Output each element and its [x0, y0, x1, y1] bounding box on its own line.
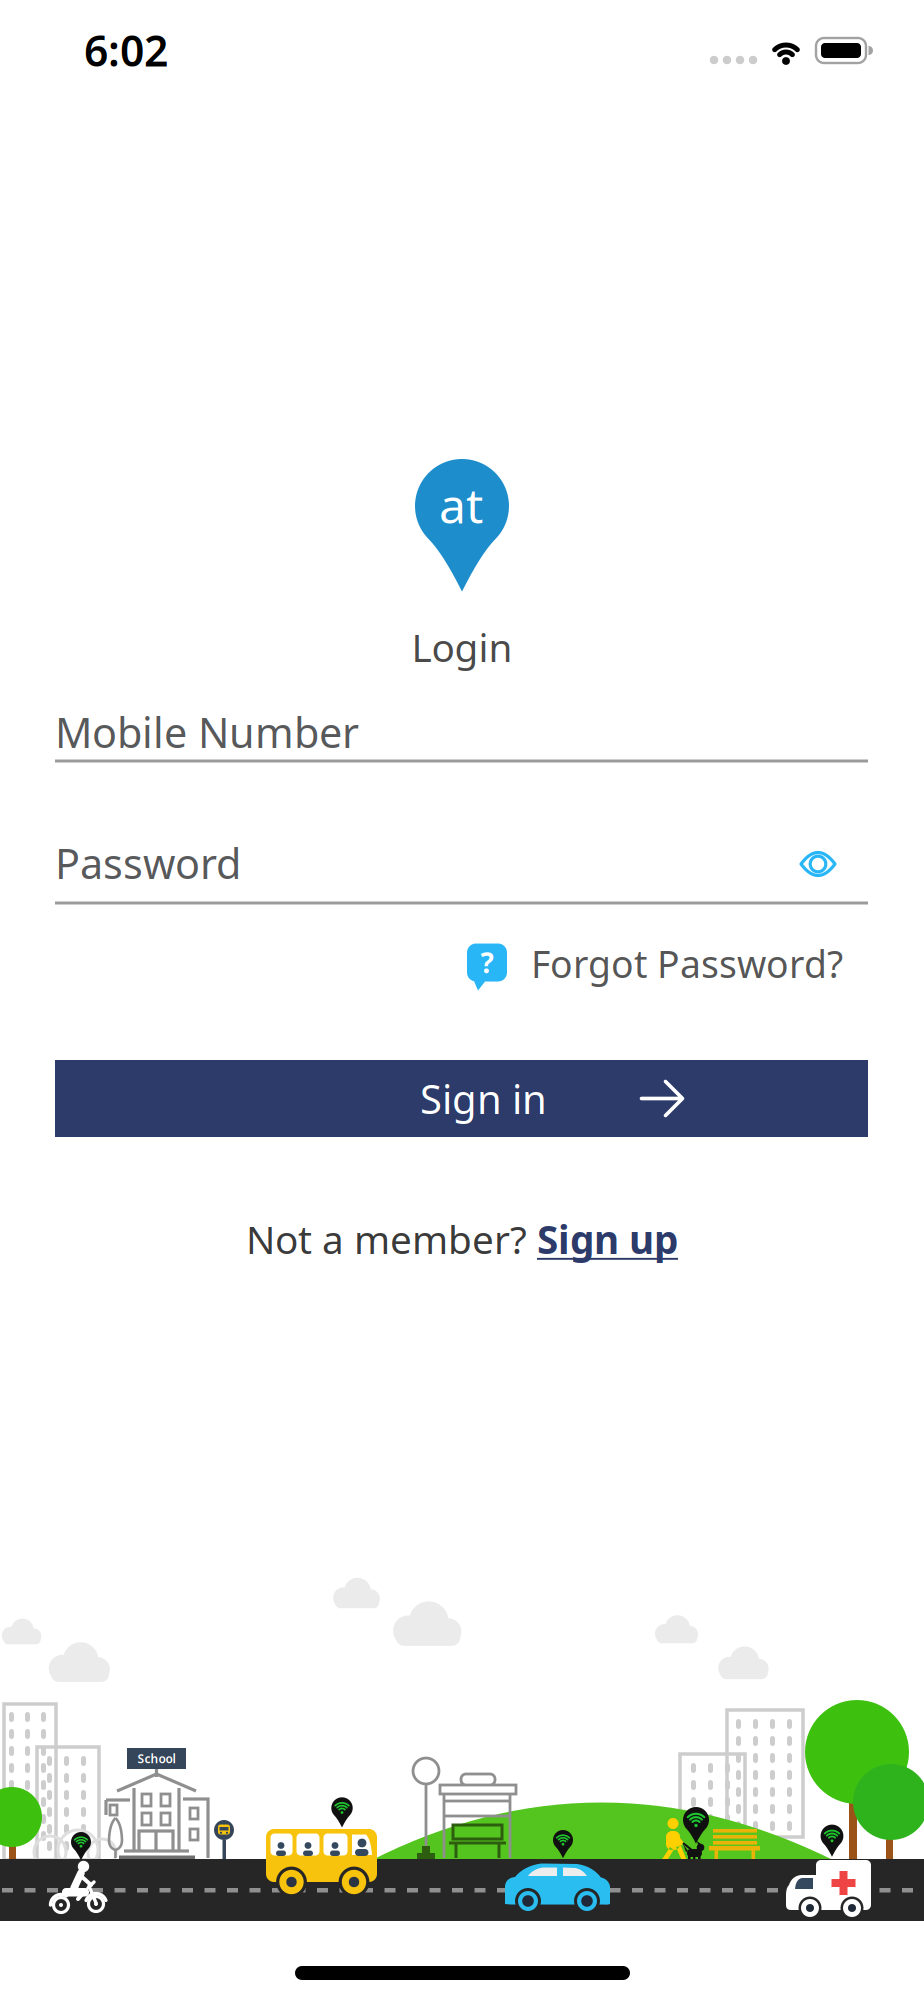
- staticText: ?: [480, 944, 493, 981]
- button[interactable]: Not a member?: [246, 1213, 678, 1265]
- staticText: 6:02: [84, 22, 168, 78]
- staticText: Sign up: [537, 1213, 678, 1265]
- staticText: Login: [411, 621, 512, 673]
- staticText: Sign in: [420, 1072, 547, 1125]
- staticText: Mobile Number: [55, 705, 359, 759]
- button[interactable]: [795, 840, 841, 888]
- button[interactable]: Sign in: [55, 1060, 868, 1137]
- button[interactable]: ?: [0, 939, 924, 988]
- staticText: Not a member?: [246, 1213, 537, 1265]
- button[interactable]: Password: [55, 835, 868, 891]
- staticText: School: [137, 1750, 175, 1766]
- staticText: Forgot Password?: [531, 939, 843, 988]
- staticText: at: [439, 473, 483, 537]
- staticText: Password: [55, 836, 241, 890]
- button[interactable]: Mobile Number: [55, 704, 868, 760]
